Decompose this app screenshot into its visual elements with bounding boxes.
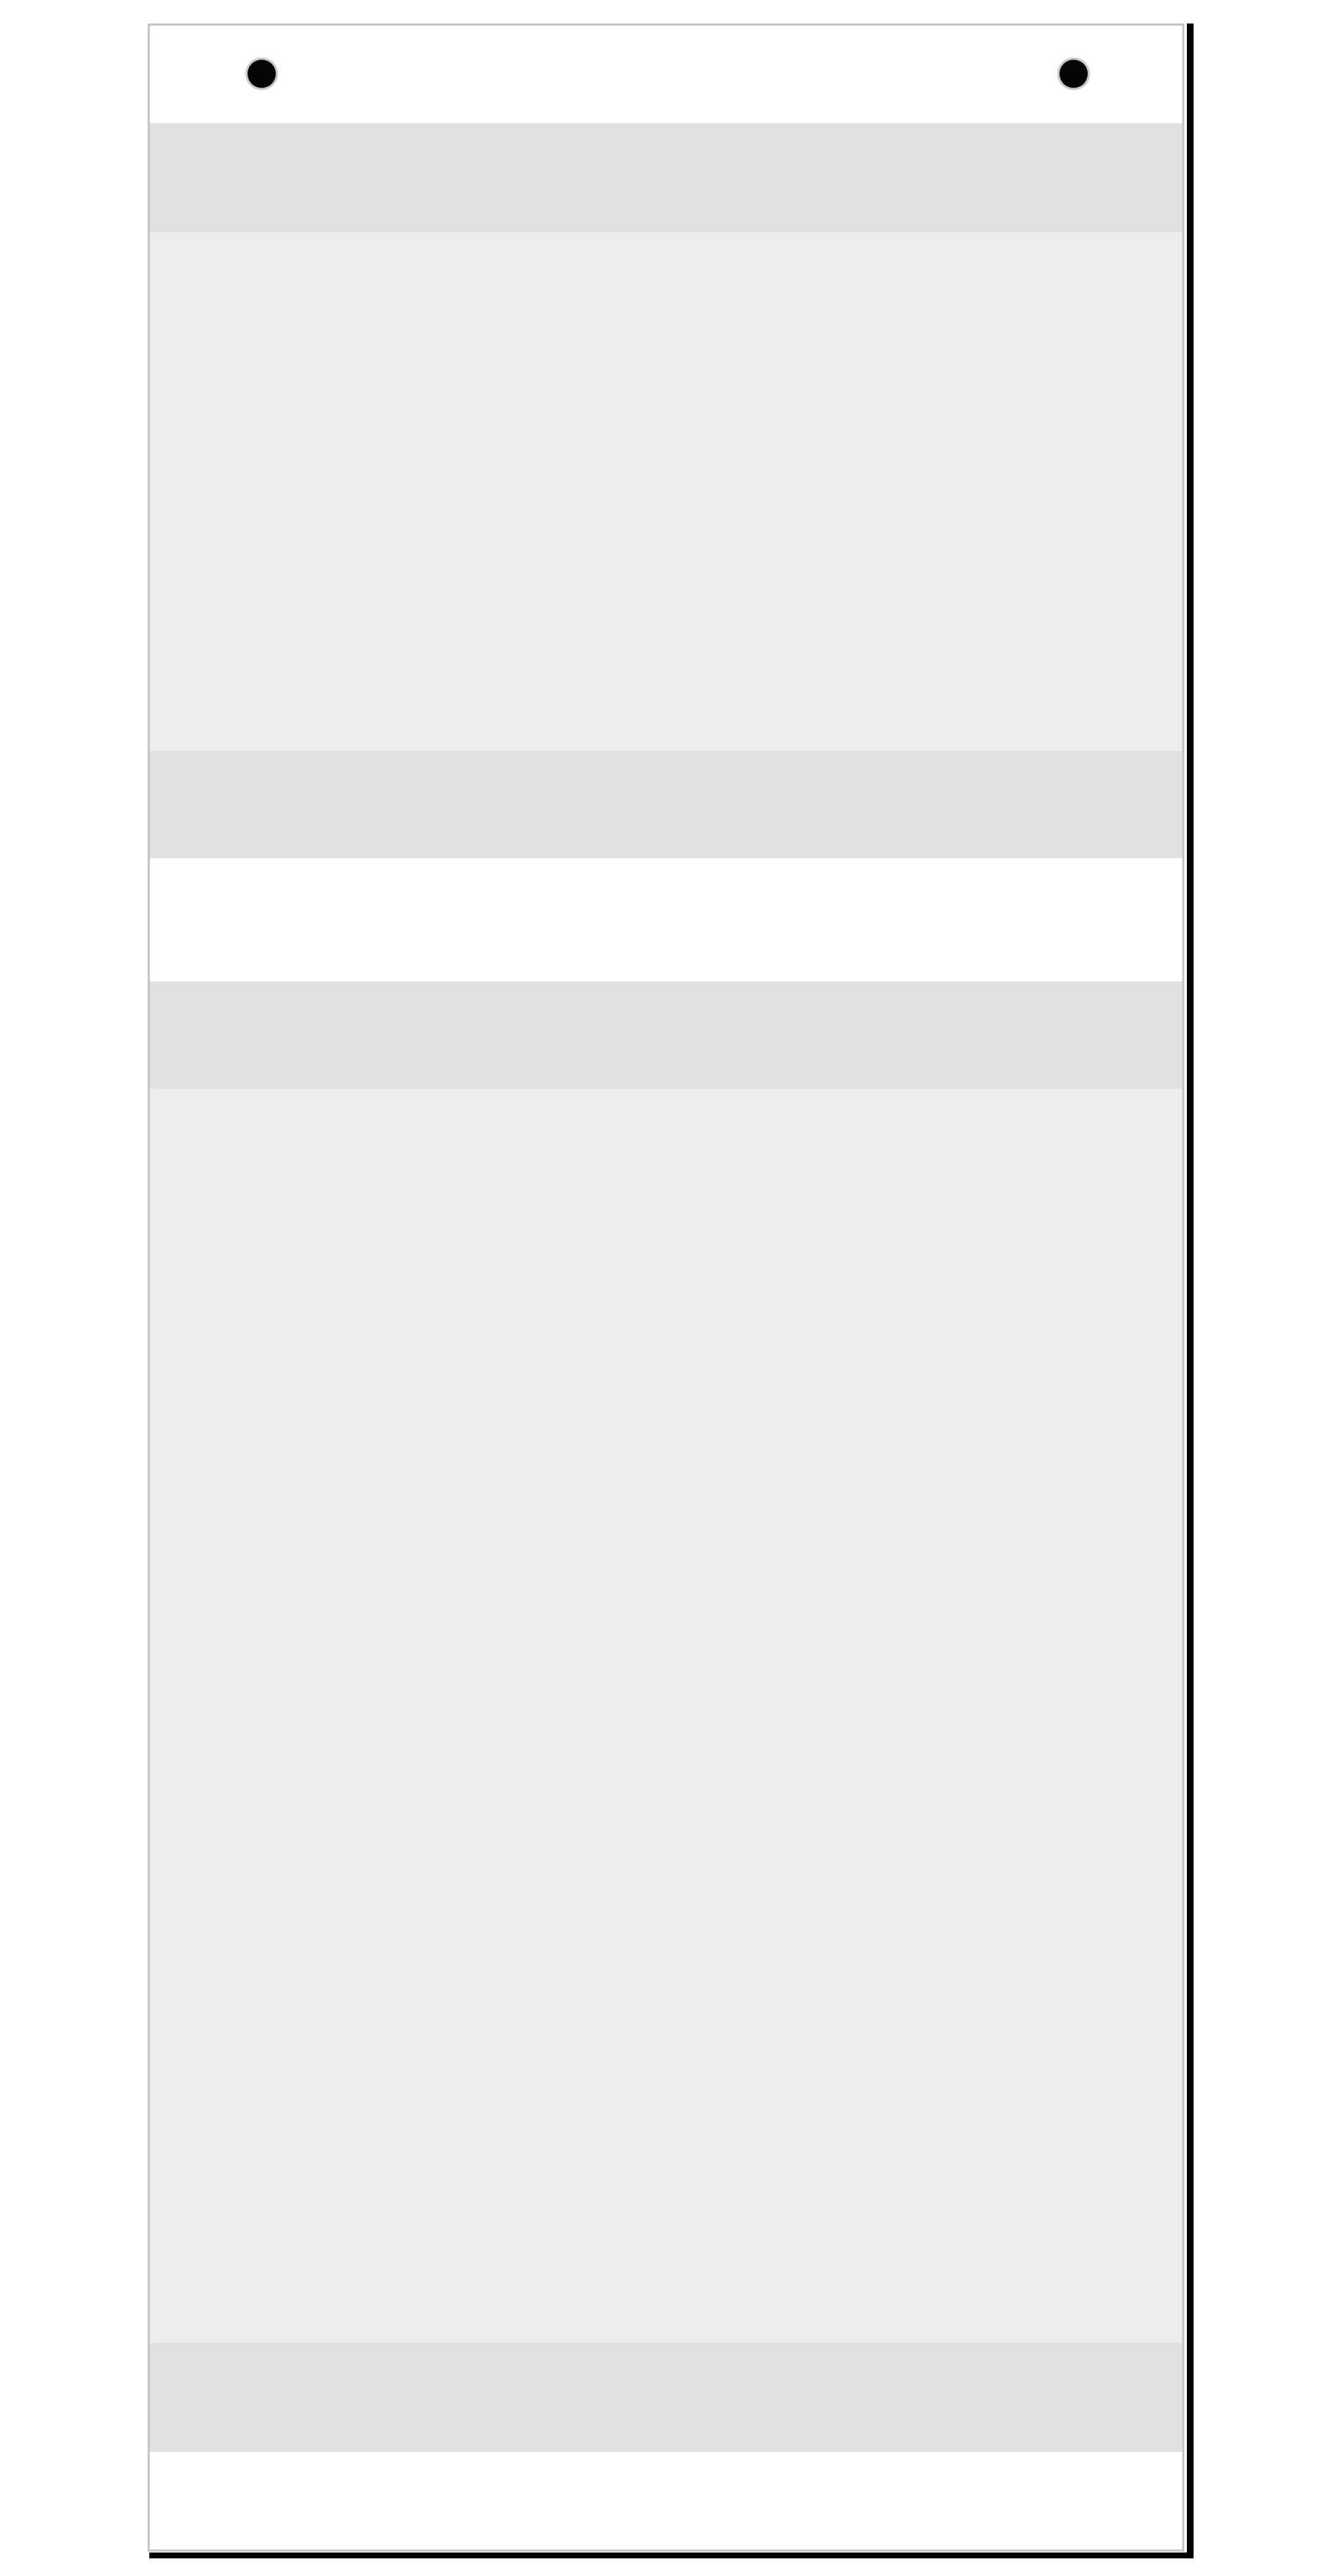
button[interactable]: More options bbox=[1033, 34, 1114, 114]
button[interactable]: Navigate up bbox=[221, 34, 302, 114]
